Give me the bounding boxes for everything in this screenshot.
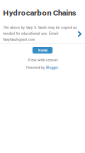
staticText: Hydrocarbon Chains: [3, 8, 76, 17]
button[interactable]: Blogger.: [46, 65, 59, 70]
staticText: Home: [37, 48, 47, 53]
button[interactable]: Next post: [77, 31, 81, 37]
staticText: View web version: [27, 57, 57, 62]
staticText: Blogger.: [46, 65, 59, 70]
button[interactable]: Home: [32, 47, 52, 53]
button[interactable]: View web version: [27, 57, 57, 62]
staticText: Powered by: [26, 65, 45, 70]
staticText: The above by Gary S. Gaule may be copied…: [3, 25, 77, 42]
